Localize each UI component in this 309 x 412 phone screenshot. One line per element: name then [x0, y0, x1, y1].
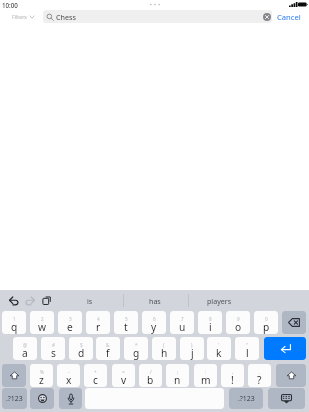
button[interactable]: Emoji	[30, 388, 54, 409]
button[interactable]: *	[124, 337, 148, 360]
button[interactable]: ,	[221, 364, 244, 387]
staticText: g	[133, 346, 140, 360]
staticText: 7	[181, 316, 184, 322]
staticText: 3	[69, 316, 72, 322]
staticText: is	[87, 296, 93, 306]
button[interactable]: 0	[254, 311, 278, 334]
staticText: i	[209, 320, 212, 334]
staticText: n	[174, 373, 181, 387]
staticText: t	[124, 320, 128, 334]
staticText: %	[40, 369, 44, 375]
staticText: has	[149, 296, 161, 306]
button[interactable]: :	[194, 364, 217, 387]
button[interactable]: 9	[226, 311, 250, 334]
staticText: 9	[237, 316, 240, 322]
staticText: :	[205, 369, 207, 375]
staticText: f	[106, 346, 110, 360]
button[interactable]: 5	[114, 311, 138, 334]
button[interactable]: "	[235, 337, 259, 360]
button[interactable]: Redo	[25, 295, 35, 306]
button[interactable]: %	[30, 364, 53, 387]
button[interactable]: 4	[86, 311, 110, 334]
staticText: r	[96, 320, 101, 334]
button[interactable]: )	[180, 337, 204, 360]
staticText: '	[218, 342, 220, 348]
staticText: Filters	[12, 13, 27, 20]
staticText: .?123	[238, 394, 255, 403]
button[interactable]: .?123	[229, 388, 263, 409]
staticText: =	[122, 369, 125, 375]
staticText: 5	[125, 316, 128, 322]
staticText: +	[94, 369, 97, 375]
button[interactable]: '	[207, 337, 231, 360]
button[interactable]: Undo	[9, 295, 19, 306]
button[interactable]: 6	[142, 311, 166, 334]
staticText: c	[93, 373, 98, 387]
staticText: .?123	[6, 394, 23, 403]
button[interactable]: is	[58, 291, 122, 311]
button[interactable]: &	[96, 337, 120, 360]
button[interactable]: $	[69, 337, 93, 360]
staticText: 8	[209, 316, 212, 322]
staticText: a	[22, 346, 28, 360]
button[interactable]: Backspace	[282, 311, 306, 334]
staticText: $	[80, 342, 83, 348]
button[interactable]: .?123	[2, 388, 27, 409]
button[interactable]: (	[152, 337, 176, 360]
staticText: .	[259, 369, 261, 375]
staticText: o	[235, 320, 242, 334]
button[interactable]: ;	[166, 364, 189, 387]
button[interactable]: +	[84, 364, 107, 387]
button[interactable]: Filters	[12, 12, 34, 21]
button[interactable]: 7	[170, 311, 194, 334]
staticText: Cancel	[277, 12, 301, 22]
staticText: h	[161, 346, 168, 360]
staticText: s	[51, 346, 56, 360]
staticText: &	[106, 342, 110, 348]
staticText: y	[151, 320, 157, 334]
staticText: 0	[265, 316, 268, 322]
button[interactable]: Paste	[42, 295, 51, 306]
staticText: v	[121, 373, 127, 387]
staticText: 6	[153, 316, 156, 322]
button[interactable]: .	[248, 364, 271, 387]
button[interactable]: =	[112, 364, 135, 387]
button[interactable]: 3	[58, 311, 82, 334]
staticText: z	[39, 373, 44, 387]
staticText: u	[179, 320, 186, 334]
button[interactable]: has	[123, 291, 187, 311]
staticText: j	[191, 346, 194, 360]
staticText: 10:00	[2, 1, 18, 9]
button[interactable]: Return	[264, 337, 306, 360]
button[interactable]: 2	[30, 311, 54, 334]
button[interactable]: players	[187, 291, 251, 311]
button[interactable]: Dictation	[59, 388, 82, 409]
staticText: w	[38, 320, 47, 334]
button[interactable]: #	[41, 337, 65, 360]
button[interactable]: Shift	[2, 364, 26, 387]
staticText: e	[67, 320, 73, 334]
staticText: p	[263, 320, 270, 334]
button[interactable]: 8	[198, 311, 222, 334]
button[interactable]: Cancel	[277, 12, 301, 22]
staticText: 2	[41, 316, 44, 322]
staticText: d	[78, 346, 85, 360]
staticText: "	[246, 342, 248, 348]
button[interactable]: Shift	[276, 364, 306, 387]
staticText: q	[11, 320, 18, 334]
button[interactable]: Hide keyboard	[268, 388, 305, 409]
staticText: Chess	[56, 12, 76, 22]
button[interactable]: /	[139, 364, 162, 387]
button[interactable]: -	[57, 364, 80, 387]
staticText: l	[246, 346, 249, 360]
staticText: -	[68, 369, 70, 375]
button[interactable]: Clear text	[263, 13, 271, 21]
staticText: #	[52, 342, 55, 348]
staticText: *	[135, 342, 138, 348]
staticText: ;	[177, 369, 179, 375]
button[interactable]: Chess	[43, 10, 272, 23]
staticText: 4	[97, 316, 100, 322]
button[interactable]: @	[13, 337, 37, 360]
button[interactable]: 1	[2, 311, 26, 334]
